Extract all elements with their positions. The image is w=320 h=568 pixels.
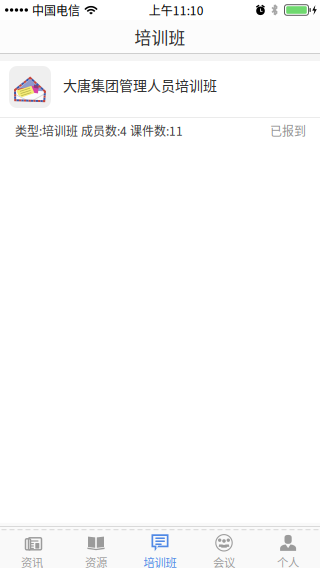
button[interactable]: 个人: [256, 523, 320, 568]
staticText: 资源: [85, 554, 107, 568]
button[interactable]: 培训班: [128, 523, 192, 568]
button[interactable]: 资讯: [0, 523, 64, 568]
button[interactable]: 大唐集团管理人员培训班: [0, 61, 320, 117]
staticText: 大唐集团管理人员培训班: [63, 75, 217, 95]
staticText: 资讯: [21, 554, 43, 568]
staticText: 会议: [213, 554, 235, 568]
button[interactable]: 会议: [192, 523, 256, 568]
staticText: 个人: [277, 554, 299, 568]
button[interactable]: 资源: [64, 523, 128, 568]
staticText: 上午11:10: [149, 1, 204, 19]
staticText: 培训班: [134, 25, 185, 49]
staticText: 已报到: [270, 122, 306, 139]
staticText: 培训班: [143, 554, 176, 568]
staticText: 类型:培训班 成员数:4 课件数:11: [15, 122, 183, 139]
staticText: 中国电信: [32, 1, 80, 19]
